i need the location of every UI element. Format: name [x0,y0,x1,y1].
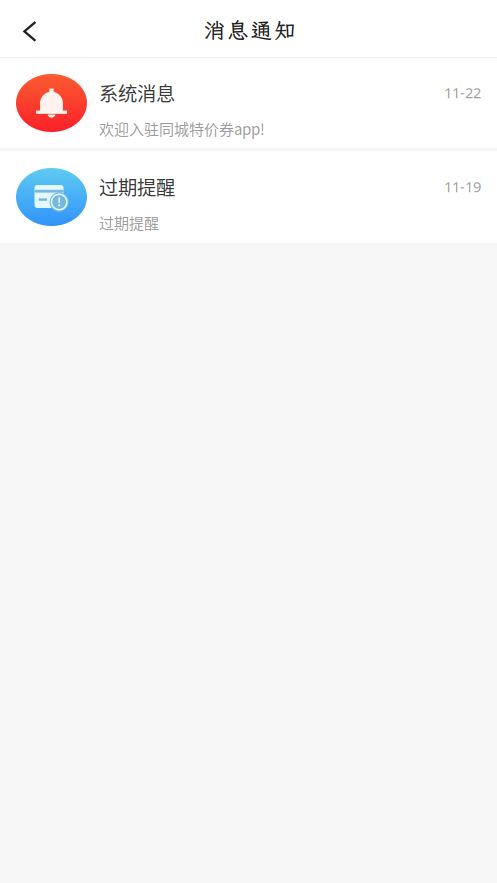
button[interactable]: 系统消息 [0,58,497,148]
button[interactable]: Back [0,6,48,50]
staticText: 欢迎入驻同城特价券app! [99,118,265,139]
staticText: 11-22 [444,83,481,102]
button[interactable]: 过期提醒 [0,151,497,243]
staticText: 11-19 [444,177,481,196]
staticText: 系统消息 [99,79,175,107]
staticText: 消息通知 [204,16,295,44]
staticText: 过期提醒 [99,173,175,201]
staticText: 过期提醒 [99,212,159,233]
